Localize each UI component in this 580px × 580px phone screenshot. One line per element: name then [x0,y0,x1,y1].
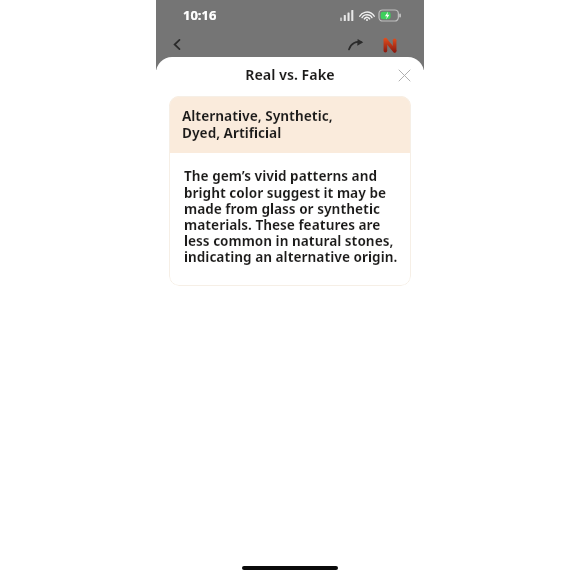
staticText: Alternative, Synthetic, Dyed, Artificial [182,107,333,142]
staticText: The gem’s vivid patterns and bright colo… [184,167,398,266]
button[interactable]: Share [344,32,368,56]
button[interactable]: Back [164,31,190,57]
button[interactable]: Close [392,63,416,87]
staticText: Real vs. Fake [245,65,335,84]
button[interactable]: App logo [378,32,402,56]
staticText: 10:16 [183,6,217,24]
button[interactable]: Alternative, Synthetic, Dyed, Artificial [169,96,411,286]
